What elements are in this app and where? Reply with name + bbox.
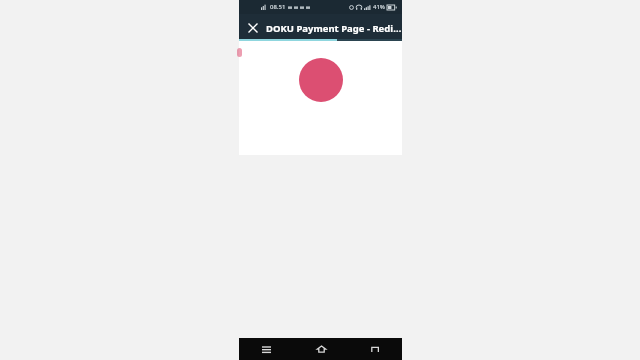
- button[interactable]: Home: [294, 338, 348, 360]
- staticText: 08.51: [270, 3, 286, 11]
- staticText: DOKU Payment Page - Redirect: [266, 22, 402, 35]
- button[interactable]: Back: [348, 338, 402, 360]
- staticText: 41%: [373, 3, 385, 11]
- button[interactable]: Close: [244, 19, 262, 37]
- button[interactable]: Recents: [239, 338, 294, 360]
